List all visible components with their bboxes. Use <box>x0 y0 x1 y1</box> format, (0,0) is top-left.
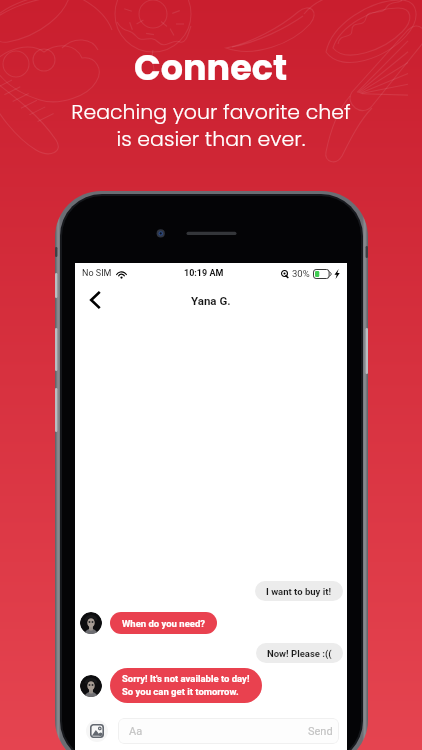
staticText: No SIM <box>82 268 112 279</box>
button[interactable]: Sorry! It's not available to day! So you… <box>110 668 262 703</box>
staticText: Aa <box>129 725 143 738</box>
staticText: Send <box>308 725 333 738</box>
button[interactable]: I want to buy it! <box>255 581 343 601</box>
button[interactable]: Aa <box>118 718 339 744</box>
staticText: Sorry! It's not available to day! So you… <box>122 673 250 698</box>
button[interactable]: Now! Please :(( <box>256 643 343 663</box>
staticText: When do you need? <box>122 618 205 629</box>
staticText: I want to buy it! <box>266 586 332 597</box>
staticText: Connect <box>134 43 288 92</box>
button[interactable]: When do you need? <box>110 612 217 634</box>
button[interactable]: Attach image <box>86 720 108 742</box>
button[interactable]: Back <box>83 288 107 312</box>
button[interactable]: Contact photo <box>80 612 102 634</box>
staticText: Reaching your favorite chef is easier th… <box>71 97 351 153</box>
staticText: Now! Please :(( <box>267 648 332 659</box>
staticText: Yana G. <box>191 294 231 307</box>
staticText: 10:19 AM <box>184 268 224 279</box>
button[interactable]: Contact photo <box>80 675 102 697</box>
staticText: 30% <box>292 268 310 279</box>
